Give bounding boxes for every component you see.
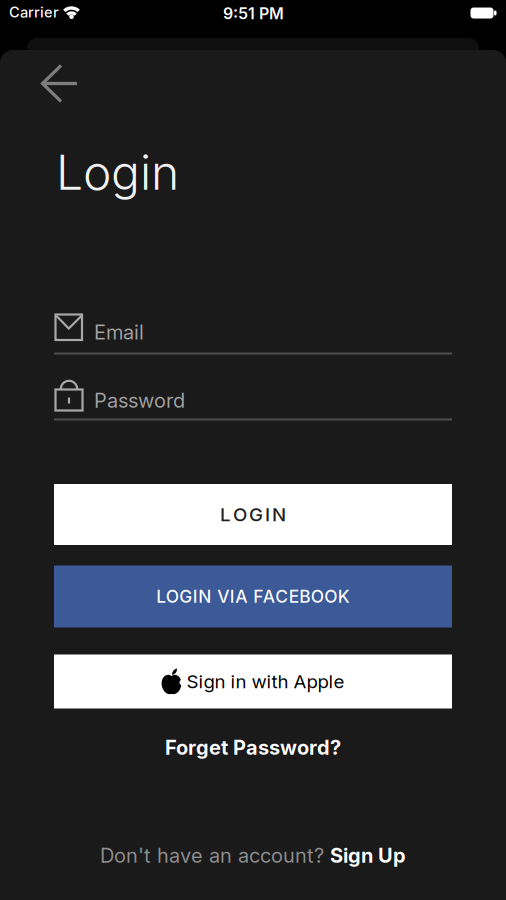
button[interactable]: L O G I N	[54, 484, 452, 545]
staticText: Sign in with Apple	[186, 670, 344, 692]
staticText: Don't have an account?	[100, 844, 330, 867]
staticText: Email	[94, 320, 144, 344]
staticText: L O G I N	[220, 503, 286, 525]
button[interactable]: Sign in with Apple	[54, 654, 452, 708]
button[interactable]	[0, 0, 506, 900]
staticText: Carrier	[9, 4, 59, 21]
staticText: Sign Up	[330, 844, 406, 867]
staticText: Login	[56, 144, 179, 201]
button[interactable]: Forget Password?	[165, 736, 341, 759]
button[interactable]	[54, 312, 453, 354]
staticText: 9:51 PM	[223, 4, 284, 23]
staticText: LOGIN VIA FACEBOOK	[156, 586, 350, 607]
staticText: Forget Password?	[165, 736, 341, 759]
button[interactable]	[54, 378, 453, 420]
button[interactable]: Don't have an account?	[100, 844, 406, 867]
button[interactable]: LOGIN VIA FACEBOOK	[54, 565, 452, 627]
staticText: Password	[94, 389, 185, 412]
